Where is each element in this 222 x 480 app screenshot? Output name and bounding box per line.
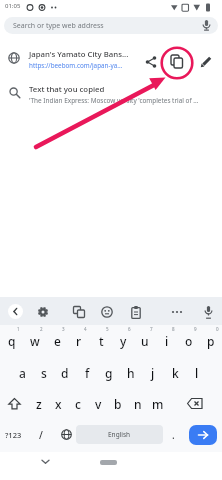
staticText: t [99,333,104,349]
button[interactable]: Japan's Yamato City Bans... [0,44,222,81]
button[interactable]: m [148,388,168,419]
button[interactable]: g [98,357,120,388]
staticText: 5 [106,326,109,332]
staticText: b [114,396,122,412]
button[interactable]: ?123 [0,419,26,450]
button[interactable] [200,55,213,68]
staticText: 4 [84,326,87,332]
button[interactable]: o [178,324,200,357]
staticText: 0 [216,326,219,332]
staticText: g [105,365,113,381]
button[interactable] [168,388,222,419]
button[interactable]: c [68,388,88,419]
button[interactable]: . [163,419,183,450]
button[interactable]: w [23,324,46,357]
button[interactable]: b [108,388,128,419]
staticText: https://beebom.com/japan-ya... [29,61,123,70]
staticText: m [152,396,164,412]
button[interactable] [144,55,158,69]
button[interactable] [37,306,49,318]
button[interactable]: / [26,419,56,450]
button[interactable]: q [0,324,23,357]
staticText: . [172,428,175,442]
button[interactable] [73,306,85,318]
staticText: Search or type web address [13,21,104,31]
button[interactable]: e [46,324,68,357]
button[interactable]: English [76,425,163,444]
button[interactable] [204,306,213,319]
button[interactable]: s [33,357,54,388]
staticText: c [75,396,81,412]
staticText: w [30,333,40,349]
button[interactable] [189,425,217,445]
button[interactable]: a [12,357,33,388]
staticText: l [195,365,199,381]
staticText: d [61,365,69,381]
staticText: x [55,396,62,412]
staticText: a [19,365,26,381]
staticText: o [185,333,193,349]
button[interactable]: Search or type web address [4,17,218,34]
button[interactable]: j [142,357,164,388]
button[interactable] [101,306,113,318]
staticText: u [141,333,149,349]
button[interactable]: k [164,357,186,388]
staticText: f [85,365,90,381]
button[interactable]: z [29,388,48,419]
staticText: j [151,365,155,381]
button[interactable]: i [156,324,178,357]
button[interactable] [0,388,29,419]
button[interactable] [171,310,183,314]
button[interactable] [56,419,76,450]
staticText: 9 [194,326,197,332]
staticText: 6 [128,326,131,332]
staticText: 8 [172,326,175,332]
staticText: 2 [40,326,43,332]
button[interactable]: f [76,357,98,388]
staticText: 01:05 [5,2,21,10]
button[interactable]: y [112,324,134,357]
staticText: r [76,333,82,349]
button[interactable]: t [90,324,112,357]
staticText: Text that you copied [29,84,105,95]
button[interactable]: h [120,357,142,388]
button[interactable]: n [128,388,148,419]
staticText: h [127,365,135,381]
button[interactable]: p [200,324,222,357]
staticText: s [41,365,47,381]
button[interactable]: l [186,357,208,388]
button[interactable] [8,304,23,319]
button[interactable]: Text that you copied [0,81,222,111]
button[interactable]: v [88,388,108,419]
staticText: Japan's Yamato City Bans... [29,49,129,60]
staticText: 'The Indian Express: Moscow varsity 'com… [29,96,199,105]
staticText: English [108,430,131,439]
staticText: y [120,333,127,349]
button[interactable] [100,460,117,465]
staticText: p [207,333,215,349]
staticText: 1 [17,326,20,332]
button[interactable] [131,306,141,319]
staticText: 3 [62,326,65,332]
button[interactable]: d [54,357,76,388]
button[interactable]: u [134,324,156,357]
staticText: i [165,333,169,349]
staticText: e [54,333,61,349]
button[interactable]: r [68,324,90,357]
button[interactable]: x [48,388,68,419]
staticText: 7 [150,326,153,332]
staticText: / [39,428,43,442]
staticText: ?123 [5,430,22,440]
staticText: v [95,396,102,412]
staticText: q [8,333,16,349]
button[interactable] [169,54,184,69]
staticText: z [36,396,42,412]
staticText: k [172,365,179,381]
staticText: n [134,396,142,412]
